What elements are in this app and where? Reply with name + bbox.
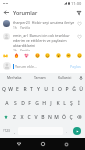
- staticText: P: [65, 86, 69, 93]
- button[interactable]: U: [42, 82, 49, 96]
- button[interactable]: O: [56, 82, 63, 96]
- staticText: B: [41, 114, 45, 121]
- staticText: I: [52, 86, 54, 93]
- staticText: Ö: [62, 114, 66, 121]
- button[interactable]: Recents: [61, 139, 71, 149]
- staticText: Merhaba: [7, 75, 22, 80]
- button[interactable]: Ğ: [70, 82, 77, 96]
- button[interactable]: L: [61, 96, 68, 110]
- staticText: U: [44, 86, 48, 93]
- staticText: Ş: [70, 100, 73, 107]
- button[interactable]: I: [49, 82, 56, 96]
- button[interactable]: Back: [2, 8, 11, 17]
- button[interactable]: Emoji reaction: [44, 52, 51, 59]
- button[interactable]: N: [46, 110, 53, 124]
- button[interactable]: Emoji reaction: [55, 52, 62, 59]
- staticText: M: [54, 114, 59, 121]
- staticText: A: [5, 100, 9, 107]
- staticText: Y: [37, 86, 40, 93]
- staticText: İ: [78, 100, 80, 107]
- button[interactable]: Emoji reaction: [13, 52, 20, 59]
- button[interactable]: W: [7, 82, 14, 96]
- staticText: Ç: [69, 114, 73, 121]
- button[interactable]: X: [18, 110, 25, 124]
- button[interactable]: Merhaba: [2, 73, 27, 82]
- button[interactable]: Emoji reaction: [23, 52, 30, 59]
- staticText: tharper23 Hicbir seyi unutma ileriye: [13, 20, 75, 25]
- staticText: K: [56, 100, 60, 107]
- button[interactable]: S: [11, 96, 19, 110]
- staticText: E: [16, 86, 19, 93]
- staticText: C: [27, 114, 31, 121]
- button[interactable]: J: [47, 96, 54, 110]
- staticText: Ğ: [72, 86, 76, 93]
- button[interactable]: Emoji reaction: [2, 52, 9, 59]
- button[interactable]: R: [21, 82, 28, 96]
- button[interactable]: Emoji reaction: [65, 52, 72, 59]
- staticText: D: [21, 100, 25, 107]
- staticText: O: [58, 86, 62, 93]
- button[interactable]: M: [53, 110, 60, 124]
- button[interactable]: Ü: [77, 82, 84, 96]
- button[interactable]: B: [39, 110, 46, 124]
- button[interactable]: emin_arl Bunun icin cok tesekkur ederim …: [0, 30, 85, 51]
- button[interactable]: Shift: [1, 110, 11, 124]
- button[interactable]: Ç: [67, 110, 74, 124]
- button[interactable]: Paylas: [69, 63, 82, 70]
- staticText: R: [23, 86, 27, 93]
- button[interactable]: C: [25, 110, 32, 124]
- staticText: H: [42, 100, 46, 107]
- button[interactable]: T: [28, 82, 35, 96]
- button[interactable]: Q: [1, 82, 7, 96]
- staticText: Kullanici: [58, 75, 72, 80]
- staticText: L: [63, 100, 66, 107]
- button[interactable]: Emoji reaction: [76, 52, 83, 59]
- button[interactable]: A: [3, 96, 11, 110]
- staticText: 1h Yanitla: [13, 26, 31, 30]
- button[interactable]: Back: [14, 139, 24, 149]
- button[interactable]: Emoji reaction: [34, 52, 41, 59]
- staticText: G: [35, 100, 39, 107]
- button[interactable]: F: [26, 96, 33, 110]
- staticText: J: [50, 100, 52, 107]
- button[interactable]: Ş: [68, 96, 75, 110]
- staticText: F: [28, 100, 31, 107]
- staticText: Yorum ekle...: [15, 64, 37, 69]
- button[interactable]: Kullanici: [52, 73, 77, 82]
- button[interactable]: ?123: [1, 124, 11, 138]
- button[interactable]: Send: [73, 127, 81, 135]
- button[interactable]: tharper23 Hicbir seyi unutma ileriye: [0, 17, 85, 30]
- button[interactable]: H: [40, 96, 47, 110]
- button[interactable]: G: [33, 96, 40, 110]
- staticText: Ü: [79, 86, 83, 93]
- button[interactable]: V: [32, 110, 39, 124]
- button[interactable]: Backspace: [74, 110, 84, 124]
- staticText: X: [20, 114, 24, 121]
- button[interactable]: Z: [11, 110, 18, 124]
- button[interactable]: Voice input: [77, 74, 84, 81]
- button[interactable]: Home: [38, 139, 48, 149]
- button[interactable]: ,: [11, 124, 18, 138]
- button[interactable]: Like: [77, 34, 82, 39]
- staticText: ?123: [3, 129, 10, 133]
- staticText: emin_arl Bunun icin cok tesekkur ederim …: [13, 33, 75, 48]
- staticText: 2h Yanitla: [13, 49, 31, 51]
- staticText: Q: [2, 86, 6, 93]
- staticText: W: [8, 86, 13, 93]
- button[interactable]: P: [63, 82, 70, 96]
- button[interactable]: K: [54, 96, 61, 110]
- staticText: N: [48, 114, 52, 121]
- button[interactable]: Y: [35, 82, 42, 96]
- staticText: Yorumlar: [13, 9, 38, 16]
- button[interactable]: Tamam: [27, 73, 52, 82]
- button[interactable]: E: [14, 82, 21, 96]
- button[interactable]: Filter: [74, 8, 83, 17]
- button[interactable]: İ: [75, 96, 82, 110]
- button[interactable]: Ö: [60, 110, 67, 124]
- staticText: Tamam: [34, 75, 46, 80]
- staticText: S: [14, 100, 17, 107]
- button[interactable]: Like: [77, 21, 82, 26]
- button[interactable]: D: [19, 96, 26, 110]
